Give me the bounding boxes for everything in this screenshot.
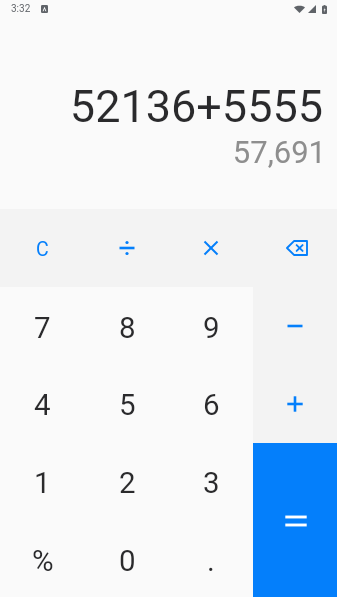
staticText: 9: [203, 311, 220, 346]
button[interactable]: Backspace: [253, 209, 337, 287]
staticText: 7: [34, 311, 51, 346]
staticText: C: [36, 238, 49, 261]
button[interactable]: 1: [0, 441, 85, 519]
button[interactable]: .: [169, 519, 253, 597]
button[interactable]: Minus: [253, 287, 337, 365]
button[interactable]: 3: [169, 441, 253, 519]
button[interactable]: 5: [85, 364, 169, 441]
button[interactable]: 4: [0, 364, 85, 441]
staticText: 0: [119, 544, 136, 579]
button[interactable]: 9: [169, 287, 253, 364]
button[interactable]: Multiply: [169, 209, 253, 287]
button[interactable]: 6: [169, 364, 253, 441]
button[interactable]: %: [0, 519, 85, 597]
button[interactable]: Equals: [253, 443, 337, 597]
button[interactable]: 7: [0, 287, 85, 364]
button[interactable]: 0: [85, 519, 169, 597]
staticText: %: [32, 544, 54, 579]
staticText: 4: [34, 388, 51, 423]
staticText: 5: [119, 388, 136, 423]
staticText: 57,691: [232, 134, 326, 170]
staticText: 1: [34, 466, 51, 501]
staticText: .: [207, 544, 215, 579]
staticText: 8: [119, 311, 136, 346]
staticText: 6: [203, 388, 220, 423]
button[interactable]: Clear: [0, 209, 85, 287]
button[interactable]: 2: [85, 441, 169, 519]
button[interactable]: Divide: [85, 209, 169, 287]
staticText: 3: [203, 466, 220, 501]
button[interactable]: Plus: [253, 365, 337, 443]
staticText: 2: [119, 466, 136, 501]
button[interactable]: 8: [85, 287, 169, 364]
staticText: 52136+5555: [69, 80, 323, 133]
staticText: 3:32: [11, 3, 31, 15]
